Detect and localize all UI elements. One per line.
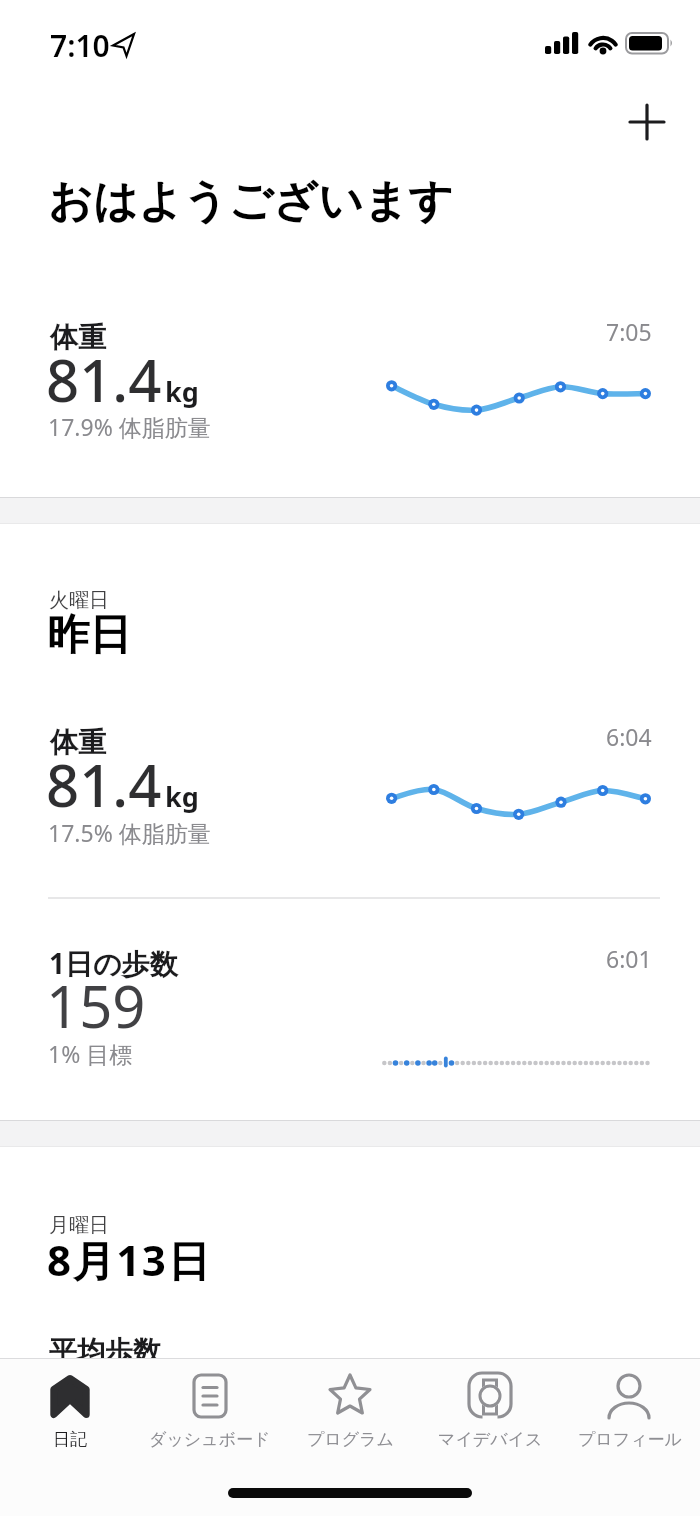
staticText: 体重 bbox=[50, 320, 106, 355]
button[interactable]: ダッシュボード bbox=[140, 1358, 280, 1458]
staticText: 81.4 bbox=[46, 745, 162, 824]
button[interactable]: 日記 bbox=[0, 1358, 140, 1458]
staticText: 昨日 bbox=[47, 609, 131, 662]
staticText: 8月13日 bbox=[47, 1231, 212, 1288]
staticText: 81.4 bbox=[46, 340, 162, 419]
staticText: 火曜日 bbox=[49, 588, 109, 613]
staticText: おはようございます bbox=[48, 174, 454, 229]
staticText: ダッシュボード bbox=[149, 1429, 271, 1450]
staticText: 159 bbox=[46, 966, 146, 1045]
button[interactable]: マイデバイス bbox=[420, 1358, 560, 1458]
staticText: 体重 bbox=[50, 725, 106, 760]
button[interactable]: 体重 bbox=[0, 296, 700, 497]
staticText: 7:10 bbox=[50, 25, 110, 66]
staticText: kg bbox=[165, 373, 199, 410]
staticText: 17.5% 体脂肪量 bbox=[48, 817, 211, 848]
staticText: 月曜日 bbox=[49, 1213, 109, 1238]
button[interactable]: プログラム bbox=[280, 1358, 420, 1458]
staticText: プログラム bbox=[307, 1429, 394, 1450]
staticText: プロフィール bbox=[578, 1429, 682, 1450]
button[interactable] bbox=[613, 88, 681, 156]
staticText: 17.9% 体脂肪量 bbox=[48, 411, 211, 442]
staticText: kg bbox=[165, 778, 199, 815]
staticText: 6:01 bbox=[606, 943, 652, 974]
button[interactable]: プロフィール bbox=[560, 1358, 700, 1458]
staticText: 6:04 bbox=[606, 721, 652, 752]
staticText: マイデバイス bbox=[438, 1429, 543, 1450]
staticText: 日記 bbox=[53, 1429, 87, 1450]
staticText: 1日の歩数 bbox=[49, 944, 178, 982]
button[interactable]: 体重 bbox=[0, 702, 700, 898]
staticText: 7:05 bbox=[606, 316, 652, 347]
staticText: 平均歩数 bbox=[49, 1334, 161, 1369]
button[interactable]: 1日の歩数 bbox=[0, 899, 700, 1120]
staticText: 1% 目標 bbox=[48, 1038, 133, 1069]
